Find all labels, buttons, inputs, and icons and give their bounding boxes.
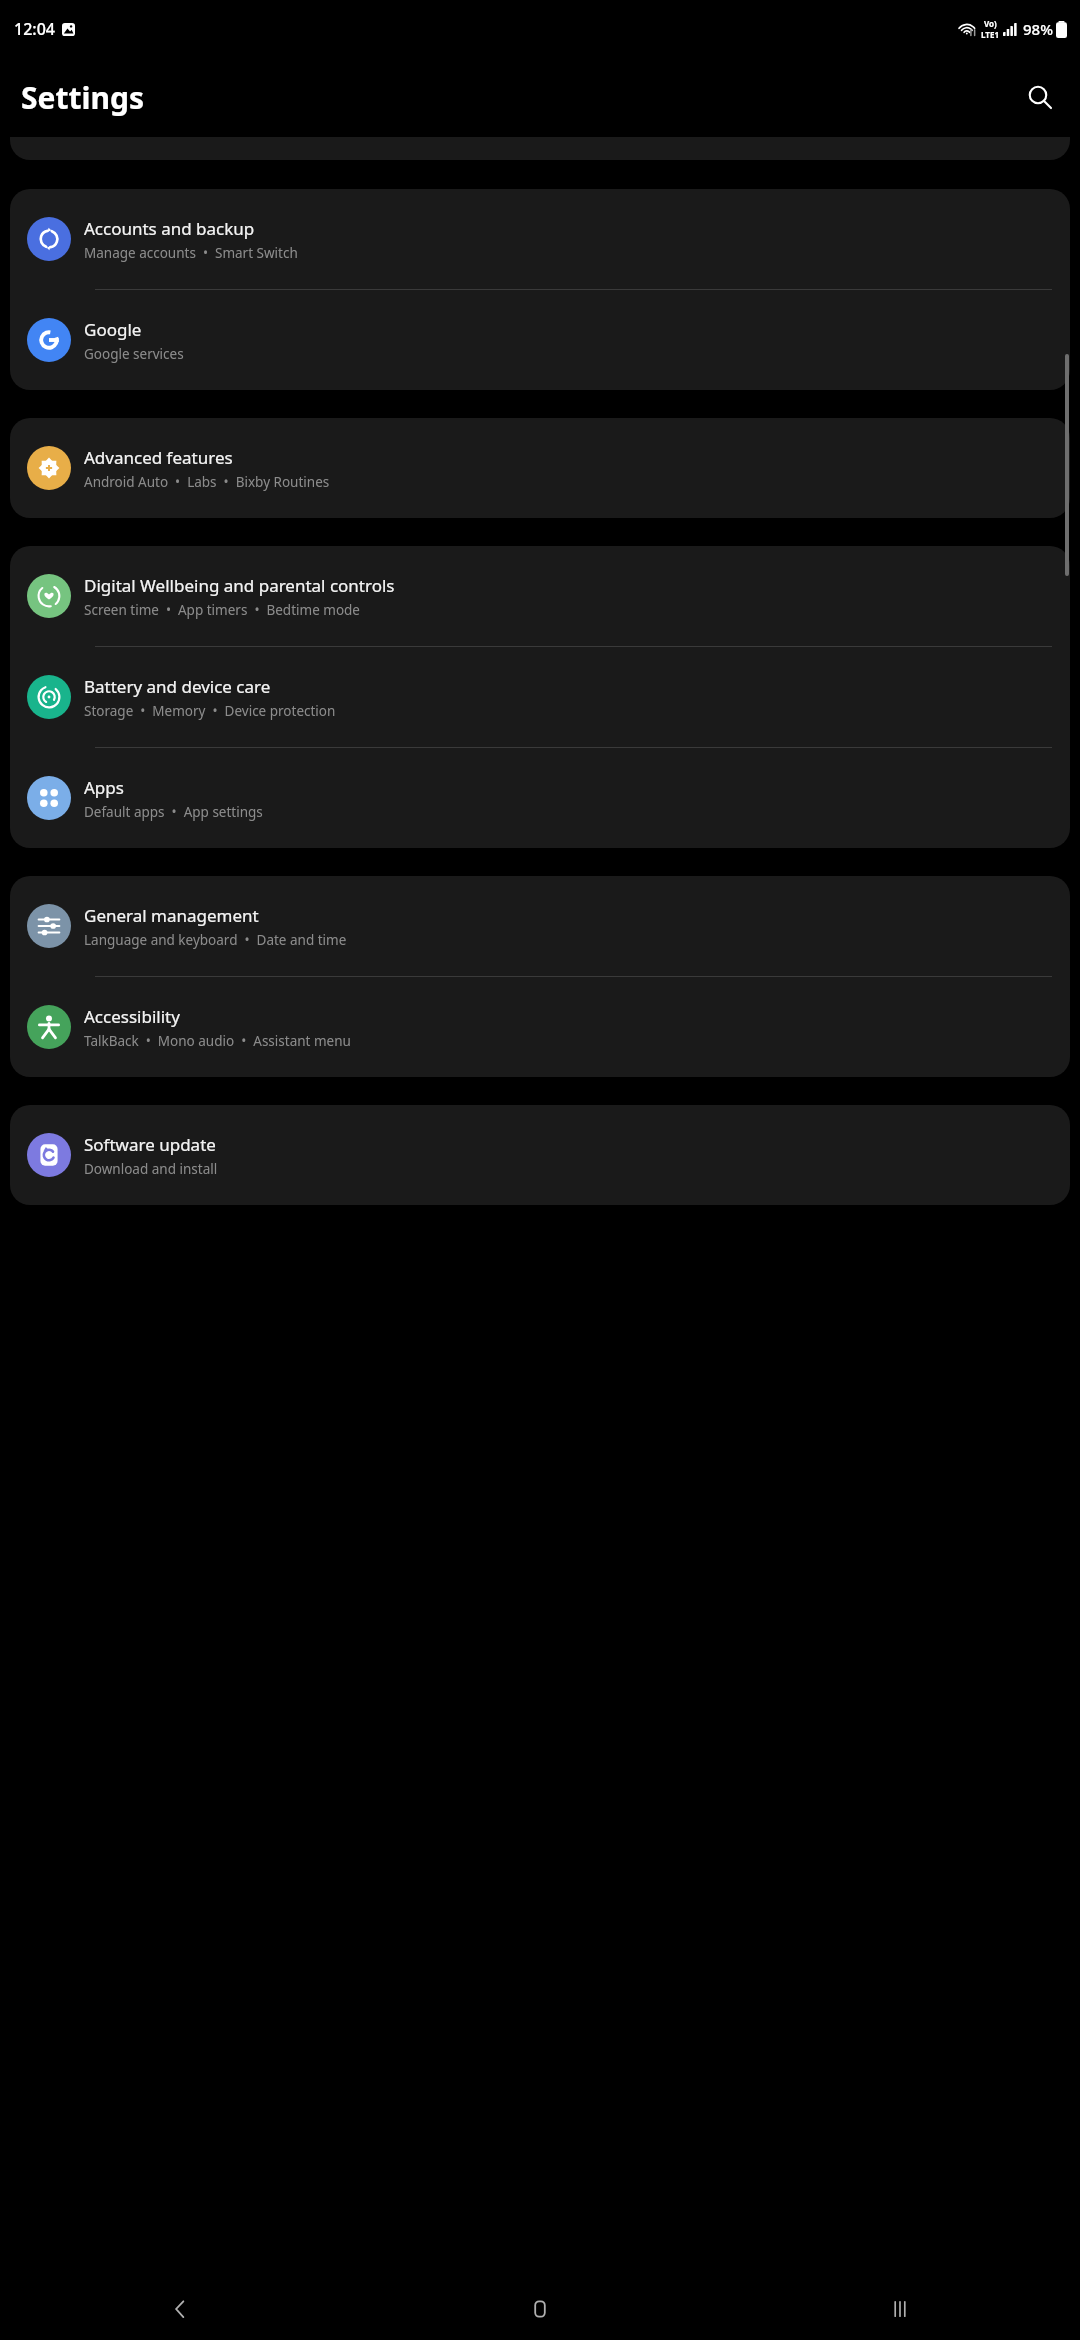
staticText: Screen time • App timers • Bedtime mode xyxy=(84,601,360,619)
staticText: Download and install xyxy=(84,1160,218,1178)
button[interactable]: Accounts and backup xyxy=(10,189,1070,289)
staticText: Google services xyxy=(84,345,184,363)
staticText: Apps xyxy=(84,776,124,799)
staticText: Default apps • App settings xyxy=(84,803,263,821)
button[interactable]: Home xyxy=(360,2278,720,2340)
staticText: Manage accounts • Smart Switch xyxy=(84,244,298,262)
staticText: 12:04 xyxy=(14,18,55,40)
staticText: TalkBack • Mono audio • Assistant menu xyxy=(84,1032,351,1050)
staticText: Google xyxy=(84,318,142,341)
staticText: General management xyxy=(84,904,259,927)
button[interactable]: Search xyxy=(1016,73,1064,121)
staticText: Language and keyboard • Date and time xyxy=(84,931,347,949)
button[interactable]: General management xyxy=(10,876,1070,976)
staticText: Android Auto • Labs • Bixby Routines xyxy=(84,473,330,491)
staticText: Battery and device care xyxy=(84,675,271,698)
staticText: 98% xyxy=(1023,19,1053,39)
button[interactable]: Advanced features xyxy=(10,418,1070,518)
staticText: Storage • Memory • Device protection xyxy=(84,702,336,720)
button[interactable]: Battery and device care xyxy=(10,647,1070,747)
staticText: Accounts and backup xyxy=(84,217,255,240)
staticText: Digital Wellbeing and parental controls xyxy=(84,574,395,597)
staticText: Software update xyxy=(84,1133,216,1156)
staticText: Advanced features xyxy=(84,446,233,469)
button[interactable]: Software update xyxy=(10,1105,1070,1205)
staticText: LTE1 xyxy=(981,29,999,40)
button[interactable]: Accessibility xyxy=(10,977,1070,1077)
button[interactable]: Recents xyxy=(720,2278,1080,2340)
button[interactable]: Google xyxy=(10,290,1070,390)
staticText: Accessibility xyxy=(84,1005,180,1028)
staticText: Vo) xyxy=(984,18,997,29)
button[interactable]: Apps xyxy=(10,748,1070,848)
button[interactable]: Back xyxy=(0,2278,360,2340)
button[interactable]: Digital Wellbeing and parental controls xyxy=(10,546,1070,646)
staticText: Settings xyxy=(21,77,144,118)
